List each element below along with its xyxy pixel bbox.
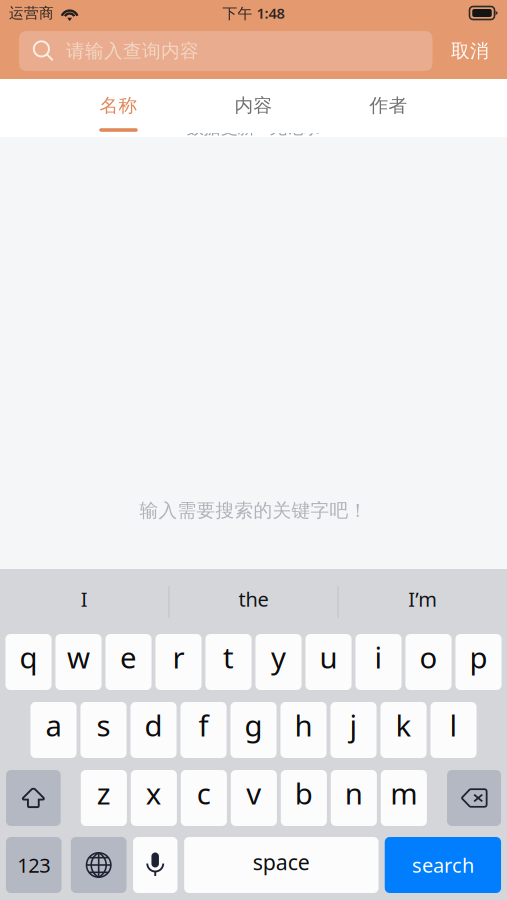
button[interactable]: 作者: [321, 79, 456, 133]
button[interactable]: z: [81, 770, 127, 826]
staticText: 输入需要搜索的关键字吧！: [139, 499, 367, 522]
staticText: h: [294, 705, 312, 744]
button[interactable]: search: [385, 837, 501, 893]
staticText: w: [67, 637, 90, 676]
staticText: f: [198, 705, 208, 744]
button[interactable]: 内容: [186, 79, 321, 133]
button[interactable]: Dictate: [133, 837, 177, 893]
staticText: 数据更新 · 无记录: [186, 115, 320, 138]
staticText: u: [319, 637, 337, 676]
staticText: 运营商: [9, 4, 54, 22]
button[interactable]: I’m: [339, 570, 507, 634]
staticText: 名称: [99, 94, 137, 117]
staticText: p: [469, 637, 487, 676]
staticText: k: [395, 705, 411, 744]
staticText: 作者: [369, 94, 407, 117]
button[interactable]: t: [205, 634, 251, 690]
button[interactable]: 123: [6, 837, 61, 893]
button[interactable]: 名称: [51, 79, 186, 133]
staticText: j: [349, 705, 357, 744]
staticText: c: [197, 773, 211, 812]
staticText: the: [238, 586, 268, 612]
button[interactable]: j: [330, 702, 376, 758]
button[interactable]: Next keyboard: [71, 837, 126, 893]
button[interactable]: 请输入查询内容: [19, 31, 432, 71]
button[interactable]: x: [131, 770, 177, 826]
staticText: a: [45, 705, 61, 744]
staticText: 123: [17, 852, 50, 878]
staticText: o: [419, 637, 437, 676]
button[interactable]: i: [355, 634, 401, 690]
staticText: x: [146, 773, 162, 812]
button[interactable]: I: [0, 570, 168, 634]
staticText: m: [390, 773, 417, 812]
button[interactable]: c: [181, 770, 227, 826]
button[interactable]: Shift: [6, 770, 61, 826]
staticText: 取消: [451, 39, 489, 62]
staticText: z: [97, 773, 111, 812]
staticText: n: [345, 773, 363, 812]
staticText: b: [295, 773, 313, 812]
button[interactable]: d: [130, 702, 176, 758]
staticText: g: [244, 705, 262, 744]
button[interactable]: b: [281, 770, 327, 826]
staticText: v: [246, 773, 261, 812]
button[interactable]: h: [280, 702, 326, 758]
staticText: 内容: [234, 94, 272, 117]
button[interactable]: p: [455, 634, 501, 690]
button[interactable]: g: [230, 702, 276, 758]
button[interactable]: the: [169, 570, 337, 634]
staticText: e: [120, 637, 137, 676]
staticText: r: [172, 637, 184, 676]
staticText: d: [144, 705, 162, 744]
staticText: y: [271, 637, 286, 676]
button[interactable]: y: [255, 634, 301, 690]
staticText: t: [223, 637, 234, 676]
staticText: I: [81, 586, 88, 612]
staticText: search: [412, 852, 474, 878]
button[interactable]: r: [155, 634, 201, 690]
staticText: 请输入查询内容: [66, 39, 199, 62]
staticText: space: [253, 848, 310, 876]
button[interactable]: e: [105, 634, 151, 690]
button[interactable]: a: [30, 702, 76, 758]
button[interactable]: space: [184, 837, 378, 893]
staticText: s: [96, 705, 110, 744]
staticText: I’m: [408, 586, 437, 612]
button[interactable]: q: [5, 634, 51, 690]
staticText: 下午 1:48: [222, 3, 284, 23]
button[interactable]: n: [331, 770, 377, 826]
button[interactable]: u: [305, 634, 351, 690]
button[interactable]: v: [231, 770, 277, 826]
button[interactable]: f: [180, 702, 226, 758]
staticText: l: [449, 705, 457, 744]
button[interactable]: 取消: [451, 31, 489, 71]
button[interactable]: l: [430, 702, 476, 758]
button[interactable]: k: [380, 702, 426, 758]
staticText: i: [374, 637, 382, 676]
button[interactable]: Delete: [447, 770, 501, 826]
button[interactable]: w: [55, 634, 101, 690]
button[interactable]: m: [381, 770, 427, 826]
button[interactable]: o: [405, 634, 451, 690]
button[interactable]: s: [80, 702, 126, 758]
staticText: q: [19, 637, 37, 676]
